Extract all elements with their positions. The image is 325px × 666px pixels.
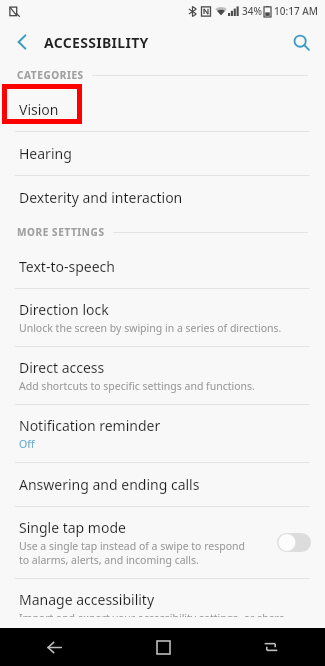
button[interactable]: Single tap mode toggle bbox=[277, 533, 311, 552]
staticText: Add shortcuts to specific settings and f… bbox=[19, 379, 255, 393]
button[interactable]: Search bbox=[285, 26, 317, 58]
button[interactable]: Answering and ending calls bbox=[0, 463, 325, 507]
button[interactable]: Hearing bbox=[0, 132, 325, 176]
button[interactable]: Home bbox=[141, 628, 185, 666]
staticText: Import and export your accessibility set… bbox=[19, 611, 285, 617]
staticText: Off bbox=[19, 437, 35, 451]
button[interactable]: Dexterity and interaction bbox=[0, 176, 325, 219]
staticText: Direction lock bbox=[19, 300, 109, 319]
staticText: Notification reminder bbox=[19, 416, 161, 435]
staticText: Single tap mode bbox=[19, 518, 126, 537]
staticText: Vision bbox=[19, 100, 59, 119]
button[interactable]: Vision bbox=[0, 88, 325, 132]
button[interactable]: Text-to-speech bbox=[0, 245, 325, 289]
button[interactable]: Back bbox=[32, 628, 76, 666]
staticText: CATEGORIES bbox=[17, 68, 84, 82]
staticText: Manage accessibility bbox=[19, 590, 155, 609]
staticText: Unlock the screen by swiping in a series… bbox=[19, 321, 282, 335]
button[interactable]: Manage accessibility bbox=[0, 579, 325, 628]
button[interactable]: Recent apps bbox=[249, 628, 293, 666]
staticText: Dexterity and interaction bbox=[19, 188, 183, 207]
button[interactable]: Notification reminder bbox=[0, 405, 325, 463]
button[interactable]: Single tap mode bbox=[0, 507, 325, 579]
staticText: Direct access bbox=[19, 358, 105, 377]
staticText: Hearing bbox=[19, 144, 72, 163]
staticText: 10:17 AM bbox=[274, 4, 318, 18]
button[interactable]: Direct access bbox=[0, 347, 325, 405]
staticText: ACCESSIBILITY bbox=[44, 33, 149, 52]
staticText: Text-to-speech bbox=[19, 257, 115, 276]
staticText: 34% bbox=[242, 4, 262, 18]
staticText: Answering and ending calls bbox=[19, 475, 200, 494]
button[interactable]: Back bbox=[6, 26, 38, 58]
button[interactable]: Direction lock bbox=[0, 289, 325, 347]
staticText: MORE SETTINGS bbox=[17, 225, 105, 239]
staticText: Use a single tap instead of a swipe to r… bbox=[19, 539, 246, 567]
